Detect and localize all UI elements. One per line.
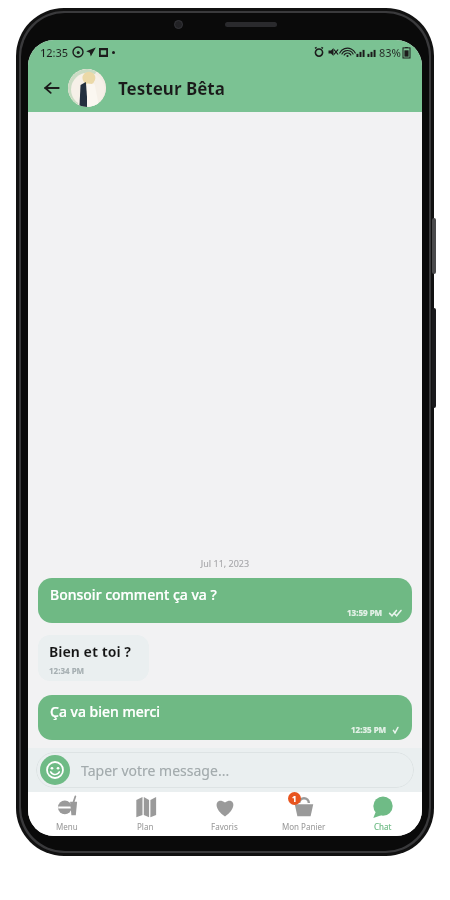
staticText: 12:35 — [40, 45, 69, 60]
button[interactable]: Bien et toi ? — [38, 635, 149, 681]
button[interactable]: Taper votre message... — [36, 752, 414, 788]
button[interactable]: Favoris — [185, 792, 264, 836]
staticText: Bien et toi ? — [49, 642, 131, 661]
staticText: 83% — [379, 45, 401, 60]
button[interactable]: Bonsoir comment ça va ? — [38, 578, 412, 623]
staticText: Bonsoir comment ça va ? — [50, 585, 217, 604]
staticText: 13:59 PM — [347, 607, 383, 618]
staticText: Jul 11, 2023 — [38, 557, 412, 569]
staticText: Chat — [374, 821, 392, 832]
button[interactable]: Profile photo — [68, 69, 106, 107]
staticText: Favoris — [211, 821, 238, 832]
staticText: Ça va bien merci — [50, 702, 161, 721]
staticText: 12:35 PM — [351, 724, 387, 735]
button[interactable]: Plan — [106, 792, 185, 836]
staticText: Testeur Bêta — [118, 77, 225, 100]
button[interactable]: Chat — [343, 792, 422, 836]
button[interactable]: Ça va bien merci — [38, 695, 412, 740]
staticText: Plan — [137, 821, 154, 832]
button[interactable]: Menu — [28, 792, 106, 836]
staticText: 1 — [292, 793, 297, 804]
staticText: Menu — [56, 821, 78, 832]
button[interactable]: Back — [38, 74, 66, 102]
button[interactable]: 1 — [264, 792, 343, 836]
staticText: 12:34 PM — [49, 665, 85, 676]
staticText: Mon Panier — [282, 821, 326, 832]
staticText: Taper votre message... — [81, 761, 230, 780]
